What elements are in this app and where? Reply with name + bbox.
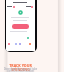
staticText: TRACK YOUR SPENDING SMARTLY [4,63,37,72]
staticText: Download the app and take control of you… [3,67,38,72]
button[interactable] [12,24,29,29]
